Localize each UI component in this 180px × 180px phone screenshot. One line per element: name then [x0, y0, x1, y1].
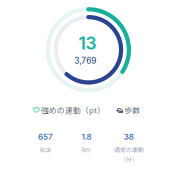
staticText: 歩数 — [124, 104, 140, 115]
staticText: 1.8 — [82, 132, 92, 142]
staticText: km — [82, 145, 91, 154]
staticText: 13 — [78, 33, 96, 54]
button[interactable]: 歩数 — [117, 104, 140, 115]
button[interactable]: 強めの運動（pt） — [33, 104, 105, 115]
staticText: 38 — [124, 132, 134, 142]
staticText: 通常の運動 — [114, 145, 144, 154]
staticText: 強めの運動（pt） — [41, 104, 105, 115]
staticText: （分） — [120, 155, 138, 163]
staticText: 3,769 — [74, 56, 96, 66]
staticText: 657 — [38, 132, 53, 142]
staticText: kcal — [40, 145, 51, 154]
